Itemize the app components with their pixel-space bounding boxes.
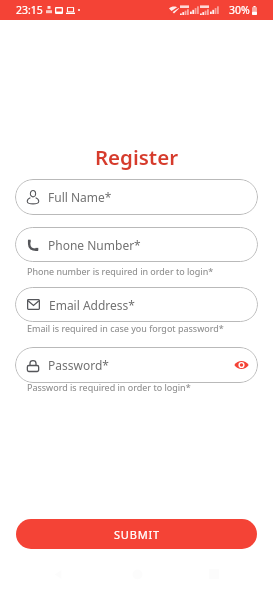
staticText: Password is required in order to login* [27, 381, 191, 393]
staticText: SUBMIT [114, 527, 160, 542]
staticText: Phone Number* [48, 237, 141, 253]
staticText: 30% [229, 3, 250, 17]
staticText: Phone number is required in order to log… [27, 265, 214, 277]
staticText: Email is required in case you forgot pas… [27, 322, 224, 334]
button[interactable]: Email Address* [15, 287, 258, 322]
staticText: Password* [48, 357, 109, 373]
staticText: Full Name* [48, 189, 112, 205]
staticText: Email Address* [49, 297, 135, 313]
staticText: Register [0, 143, 273, 171]
button[interactable]: Full Name* [15, 179, 258, 215]
staticText: 23:15 [16, 3, 43, 17]
button[interactable]: Password* [15, 347, 258, 383]
button[interactable]: SUBMIT [16, 519, 257, 549]
button[interactable]: Phone Number* [15, 227, 258, 262]
button[interactable]: Show password [232, 356, 250, 374]
